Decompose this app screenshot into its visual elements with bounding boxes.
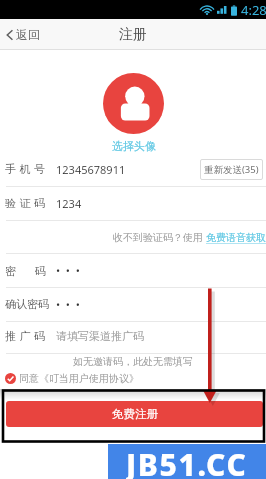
staticText: 密 码 [5, 263, 47, 278]
staticText: 12345678911 [56, 162, 200, 177]
button[interactable]: 同意《叮当用户使用协议》 [5, 372, 139, 385]
staticText: 收不到验证码？使用 [113, 230, 206, 244]
staticText: 4:28 [241, 1, 266, 19]
staticText: 确认密码 [5, 297, 49, 311]
staticText: 同意《叮当用户使用协议》 [19, 372, 139, 385]
button[interactable]: 免费注册 [6, 401, 263, 427]
button[interactable]: 免费语音获取 [206, 231, 266, 244]
staticText: 如无邀请码，此处无需填写 [73, 355, 193, 368]
button[interactable]: 返回 [0, 19, 48, 50]
staticText: • • • [56, 263, 263, 278]
staticText: 返回 [16, 27, 40, 42]
staticText: JB51.CC [126, 444, 248, 479]
staticText: 免费注册 [112, 407, 158, 421]
staticText: • • • [56, 297, 263, 312]
staticText: 重新发送(35) [204, 163, 259, 176]
staticText: 注册 [119, 26, 147, 44]
button[interactable]: 选择头像 [103, 73, 164, 134]
staticText: 1234 [56, 196, 263, 211]
staticText: 推广码 [5, 329, 49, 343]
staticText: 手机号 [5, 162, 49, 176]
staticText: 验证码 [5, 196, 49, 210]
staticText: 选择头像 [112, 139, 156, 153]
staticText: 请填写渠道推广码 [56, 329, 263, 343]
button[interactable]: 重新发送(35) [200, 159, 263, 180]
